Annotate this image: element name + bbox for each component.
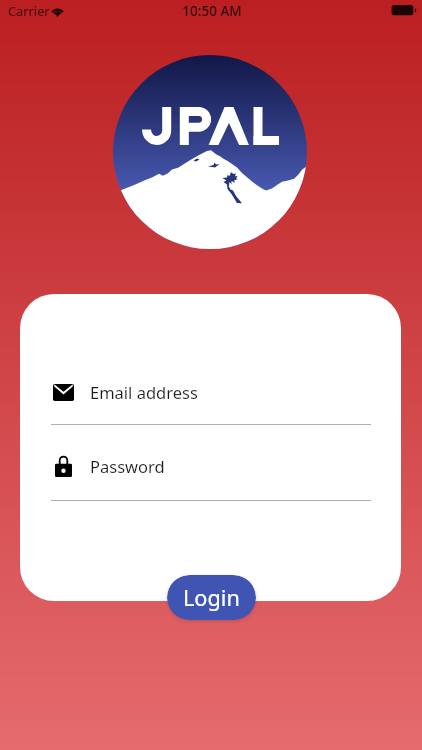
staticText: Email address [90, 381, 198, 403]
staticText: Password [90, 455, 165, 477]
staticText: Carrier [8, 2, 50, 19]
staticText: Login [183, 583, 240, 613]
staticText: 10:50 AM [182, 2, 242, 20]
button[interactable] [51, 370, 371, 428]
button[interactable] [51, 442, 371, 500]
button[interactable]: Login [167, 575, 256, 620]
